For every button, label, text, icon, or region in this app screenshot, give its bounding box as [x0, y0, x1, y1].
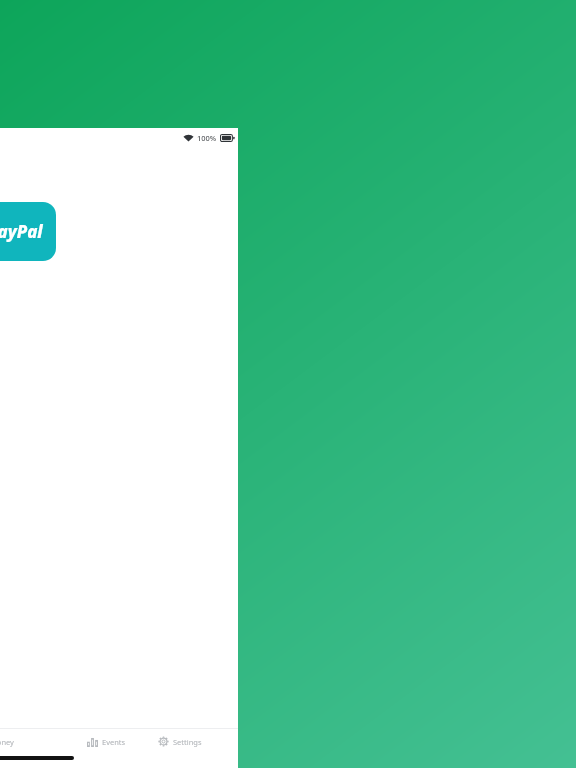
staticText: PayPal: [0, 220, 43, 243]
button[interactable]: Events: [82, 731, 131, 752]
staticText: Events: [102, 737, 126, 747]
staticText: Settings: [173, 737, 202, 747]
button[interactable]: Pay with PayPal: [0, 202, 56, 261]
staticText: Earn Money: [0, 737, 14, 747]
button[interactable]: Settings: [153, 731, 207, 752]
staticText: 100%: [197, 133, 217, 143]
button[interactable]: Earn Money: [0, 732, 20, 752]
